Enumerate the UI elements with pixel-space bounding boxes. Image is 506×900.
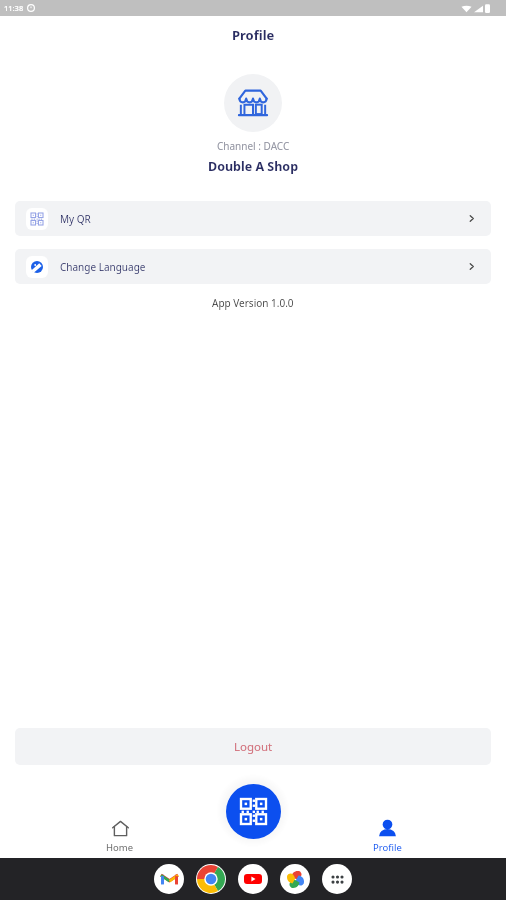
button[interactable]: Scan QR code bbox=[226, 784, 281, 839]
staticText: Profile bbox=[373, 841, 402, 854]
staticText: Profile bbox=[232, 26, 275, 44]
staticText: Change Language bbox=[60, 260, 146, 274]
button[interactable]: All apps bbox=[322, 864, 352, 894]
staticText: Logout bbox=[234, 739, 273, 755]
button[interactable]: Profile bbox=[357, 820, 417, 855]
button[interactable]: Home bbox=[90, 820, 150, 855]
staticText: My QR bbox=[60, 212, 91, 226]
button[interactable]: Gmail bbox=[154, 864, 184, 894]
button[interactable]: Chrome bbox=[196, 864, 226, 894]
staticText: Home bbox=[106, 841, 134, 854]
button[interactable]: My QR bbox=[15, 201, 491, 236]
staticText: Double A Shop bbox=[208, 158, 299, 175]
button[interactable]: YouTube bbox=[238, 864, 268, 894]
staticText: App Version 1.0.0 bbox=[212, 296, 294, 310]
button[interactable]: Logout bbox=[15, 728, 491, 765]
button[interactable]: Google Photos bbox=[280, 864, 310, 894]
staticText: 11:38 bbox=[4, 3, 24, 13]
button[interactable]: Change Language bbox=[15, 249, 491, 284]
staticText: Channel : DACC bbox=[217, 139, 290, 153]
